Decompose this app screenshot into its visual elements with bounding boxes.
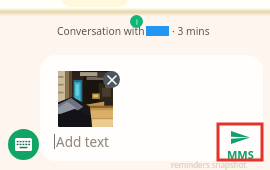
staticText: Add text xyxy=(56,133,109,150)
staticText: Conversation with xyxy=(57,24,145,38)
staticText: MMS xyxy=(227,147,254,162)
staticText: · 3 mins xyxy=(172,24,210,38)
staticText: reminders snapshot xyxy=(171,159,247,170)
button[interactable]: Remove attachment xyxy=(103,71,120,88)
button[interactable]: Add text xyxy=(54,133,134,150)
button[interactable]: Send MMS xyxy=(218,124,262,160)
button[interactable]: Keyboard xyxy=(8,129,39,160)
